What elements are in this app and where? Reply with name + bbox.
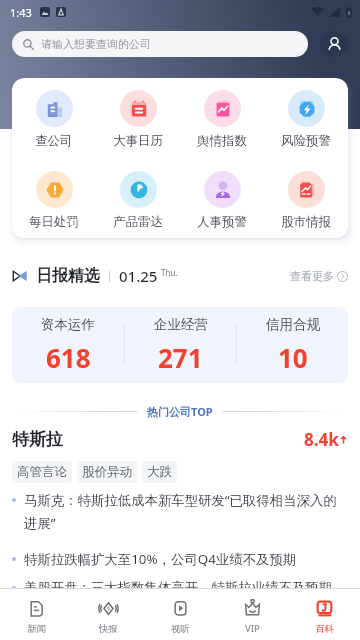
staticText: 股市情报 xyxy=(281,214,331,230)
staticText: 查公司 xyxy=(35,133,73,149)
staticText: 资本运作 xyxy=(41,316,95,333)
button[interactable]: 股市情报 xyxy=(264,171,348,230)
staticText: 查看更多 xyxy=(290,269,334,283)
button[interactable]: 企业经营 xyxy=(125,316,236,375)
button[interactable]: 请输入想要查询的公司 xyxy=(12,31,308,57)
staticText: 马斯克：特斯拉低成本新车型研发“已取得相当深入的进展” xyxy=(24,491,346,532)
staticText: 视听 xyxy=(171,623,190,635)
staticText: 1:43 xyxy=(10,5,32,20)
staticText: 舆情指数 xyxy=(197,133,247,149)
staticText: 请输入想要查询的公司 xyxy=(41,37,151,51)
button[interactable]: 资本运作 xyxy=(12,316,124,375)
staticText: 股价异动 xyxy=(82,464,132,480)
button[interactable]: 风险预警 xyxy=(264,90,348,149)
staticText: 百科 xyxy=(315,623,334,635)
button[interactable]: 视听 xyxy=(144,599,216,635)
button[interactable]: 信用合规 xyxy=(237,316,348,375)
staticText: 新闻 xyxy=(27,623,46,635)
button[interactable]: 特斯拉 xyxy=(0,428,360,483)
staticText: 信用合规 xyxy=(266,316,320,333)
staticText: 风险预警 xyxy=(281,133,331,149)
staticText: 企业经营 xyxy=(154,316,208,333)
button[interactable]: 新闻 xyxy=(0,599,72,635)
button[interactable]: 人事预警 xyxy=(180,171,264,230)
staticText: 大跌 xyxy=(147,464,172,480)
button[interactable]: 产品雷达 xyxy=(96,171,180,230)
staticText: 618 xyxy=(46,340,91,375)
button[interactable]: 马斯克：特斯拉低成本新车型研发“已取得相当深入的进展” xyxy=(0,484,360,539)
staticText: 产品雷达 xyxy=(113,214,163,230)
button[interactable]: 舆情指数 xyxy=(180,90,264,149)
staticText: 美股开盘：三大指数集体高开，特斯拉业绩不及预期 xyxy=(24,579,332,596)
button[interactable]: 美股开盘：三大指数集体高开，特斯拉业绩不及预期 xyxy=(0,568,360,603)
staticText: 快报 xyxy=(99,623,118,635)
staticText: 高管言论 xyxy=(17,464,67,480)
button[interactable]: 查看更多 xyxy=(290,269,348,283)
staticText: 特斯拉 xyxy=(12,429,63,450)
staticText: VIP xyxy=(245,622,260,635)
staticText: 热门公司TOP xyxy=(147,404,213,419)
button[interactable]: VIP xyxy=(216,598,288,635)
button[interactable]: 大事日历 xyxy=(96,90,180,149)
button[interactable]: Profile xyxy=(320,31,348,57)
staticText: 大事日历 xyxy=(113,133,163,149)
button[interactable]: 股价异动 xyxy=(77,461,137,483)
button[interactable]: 查公司 xyxy=(12,90,96,149)
button[interactable]: 特斯拉跌幅扩大至10%，公司Q4业绩不及预期 xyxy=(0,539,360,568)
button[interactable]: 大跌 xyxy=(142,461,177,483)
staticText: 01.25 xyxy=(119,266,158,286)
staticText: 日报精选 xyxy=(36,266,100,286)
staticText: 10 xyxy=(278,340,308,375)
staticText: Thu. xyxy=(161,267,178,278)
staticText: 每日处罚 xyxy=(29,214,79,230)
button[interactable]: 百科 xyxy=(288,599,360,635)
staticText: 271 xyxy=(158,340,203,375)
button[interactable]: 高管言论 xyxy=(12,461,72,483)
staticText: 特斯拉跌幅扩大至10%，公司Q4业绩不及预期 xyxy=(24,550,297,568)
button[interactable]: 每日处罚 xyxy=(12,171,96,230)
staticText: 8.4k xyxy=(304,428,339,451)
staticText: 人事预警 xyxy=(197,214,247,230)
button[interactable]: 快报 xyxy=(72,599,144,635)
